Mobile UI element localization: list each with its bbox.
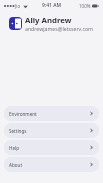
staticText: Help [9, 145, 20, 151]
staticText: andrewjames@letsserv.com [25, 25, 93, 32]
staticText: Ally Andrew [25, 15, 72, 26]
staticText: Environment [9, 111, 37, 117]
button[interactable]: About [4, 157, 99, 172]
staticText: 9:41 AM [42, 2, 62, 9]
button[interactable]: Environment [4, 106, 99, 121]
staticText: About [9, 162, 23, 168]
button[interactable]: Help [4, 140, 99, 155]
staticText: Jio [15, 3, 21, 9]
staticText: Settings [9, 128, 27, 134]
other: Profile [9, 17, 22, 30]
staticText: 100% [79, 3, 91, 9]
button[interactable]: Settings [4, 123, 99, 138]
